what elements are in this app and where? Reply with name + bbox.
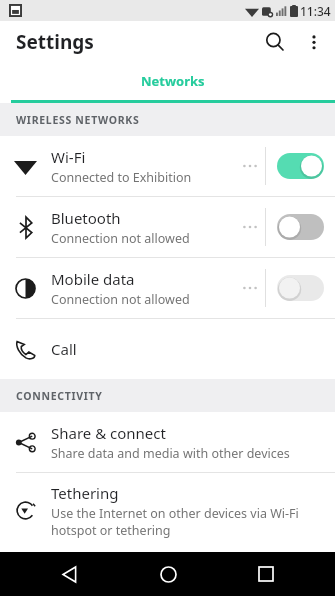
staticText: Wi-Fi — [51, 147, 86, 167]
staticText: Share & connect — [51, 423, 166, 443]
button[interactable]: Toggle — [277, 275, 324, 301]
button[interactable]: Toggle — [277, 214, 324, 240]
button[interactable]: Wi-Fi — [0, 136, 335, 196]
staticText: Networks — [141, 72, 205, 90]
staticText: CONNECTIVITY — [16, 389, 103, 403]
staticText: Bluetooth — [51, 208, 121, 228]
staticText: 11:34 — [300, 3, 331, 19]
staticText: Connection not allowed — [51, 291, 190, 308]
staticText: WIRELESS NETWORKS — [16, 113, 140, 127]
button[interactable]: Share & connect — [0, 412, 335, 472]
staticText: Share data and media with other devices — [51, 445, 290, 462]
staticText: Connection not allowed — [51, 230, 190, 247]
button[interactable]: Back — [39, 552, 99, 596]
button[interactable]: Toggle — [277, 153, 324, 179]
staticText: Tethering — [51, 483, 119, 503]
button[interactable]: Search — [255, 22, 295, 62]
staticText: Mobile data — [51, 269, 135, 289]
staticText: Call — [51, 339, 77, 359]
button[interactable]: Recent apps — [236, 552, 296, 596]
staticText: Settings — [16, 29, 94, 55]
button[interactable]: Call — [0, 319, 335, 379]
button[interactable]: More options — [295, 23, 333, 61]
button[interactable]: Tethering — [0, 473, 335, 547]
button[interactable]: Home — [138, 552, 198, 596]
button[interactable]: Networks — [11, 62, 335, 103]
button[interactable]: Mobile data — [0, 258, 335, 318]
staticText: Use the Internet on other devices via Wi… — [51, 505, 329, 538]
staticText: Connected to Exhibition — [51, 169, 192, 186]
button[interactable]: Bluetooth — [0, 197, 335, 257]
